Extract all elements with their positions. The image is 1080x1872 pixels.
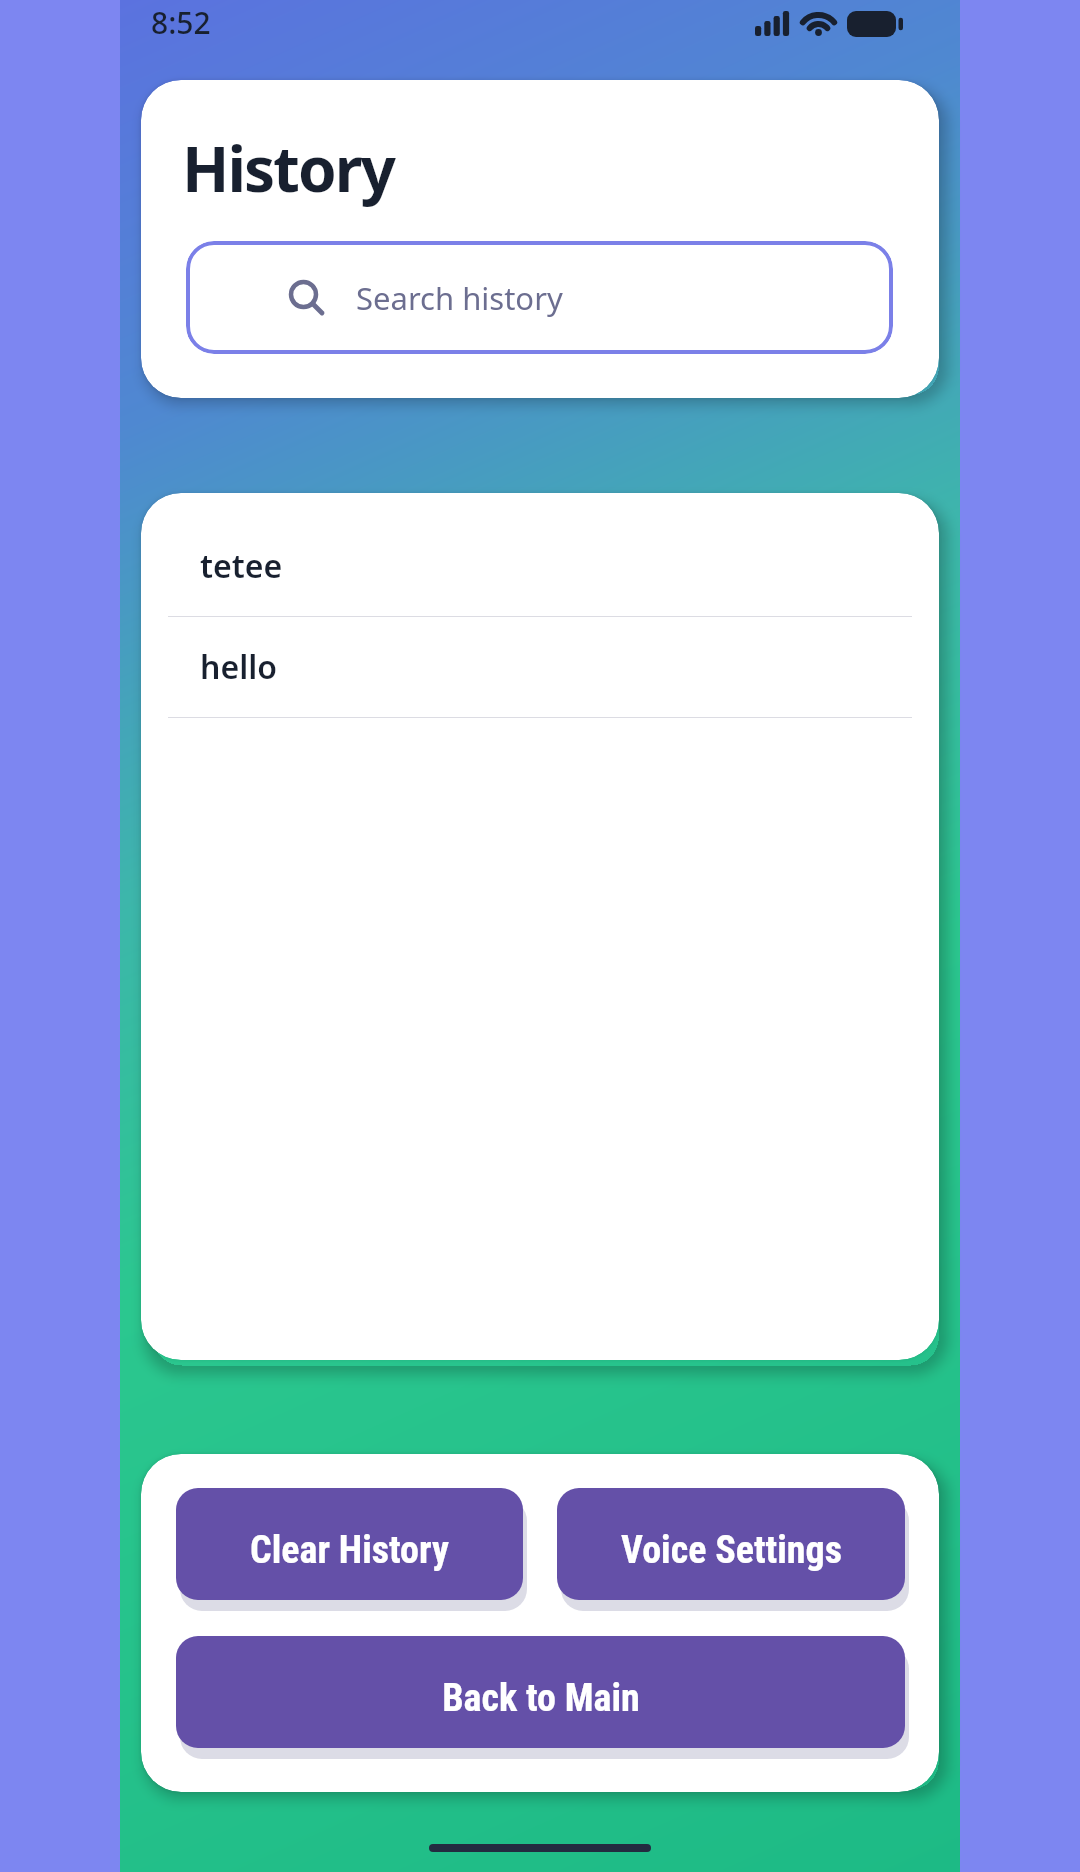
staticText: tetee (200, 544, 283, 588)
button[interactable]: Search (186, 241, 893, 354)
button[interactable]: Back to Main (176, 1636, 905, 1748)
staticText: Voice Settings (621, 1528, 842, 1573)
button[interactable]: tetee (168, 516, 912, 616)
other: Search (289, 280, 325, 316)
staticText: Back to Main (442, 1676, 640, 1721)
staticText: Clear History (250, 1528, 449, 1573)
staticText: History (182, 126, 394, 210)
button[interactable]: hello (168, 617, 912, 717)
button[interactable]: Voice Settings (557, 1488, 905, 1600)
staticText: hello (200, 645, 277, 689)
button[interactable]: Clear History (176, 1488, 523, 1600)
staticText: 8:52 (151, 2, 211, 43)
staticText: Search history (356, 277, 563, 319)
